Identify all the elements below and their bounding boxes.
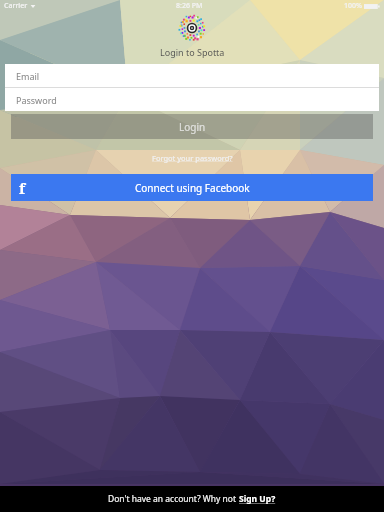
staticText: 8:26 PM: [176, 1, 203, 11]
staticText: Email: [16, 70, 40, 82]
button[interactable]: Don't have an account? Why not: [0, 486, 384, 512]
button[interactable]: Forgot your password?: [146, 151, 239, 165]
staticText: Login: [179, 120, 206, 134]
button[interactable]: Email: [5, 64, 379, 87]
staticText: Forgot your password?: [152, 153, 233, 163]
staticText: Connect using Facebook: [135, 181, 250, 195]
button[interactable]: f: [11, 174, 373, 201]
button[interactable]: Login: [11, 114, 373, 139]
staticText: Don't have an account? Why not: [108, 493, 239, 505]
button[interactable]: Password: [5, 88, 379, 111]
staticText: Login to Spotta: [160, 46, 225, 58]
staticText: 100%: [344, 1, 362, 11]
staticText: Sign Up?: [239, 493, 276, 505]
staticText: Carrier: [4, 1, 28, 11]
staticText: Password: [16, 94, 57, 106]
staticText: f: [19, 178, 26, 198]
